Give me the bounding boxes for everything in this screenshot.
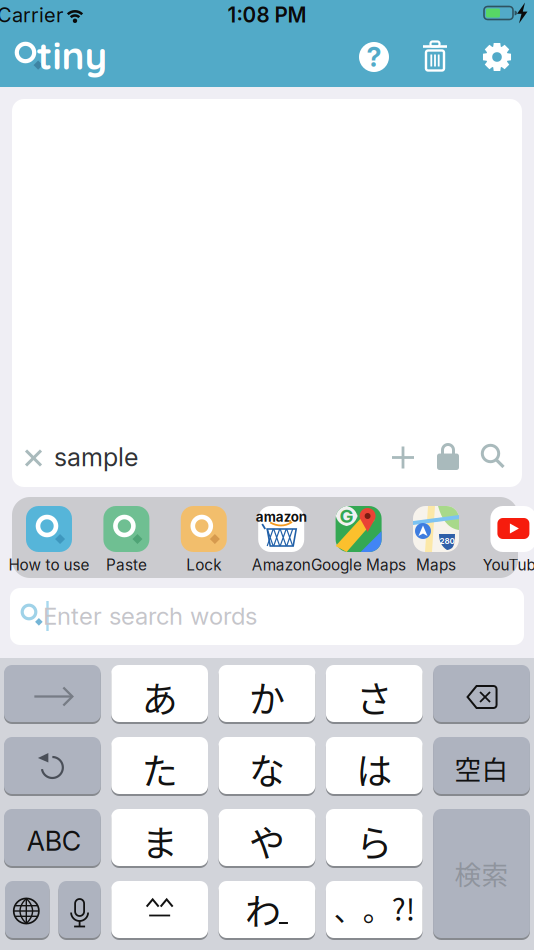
staticText: How to use (8, 556, 89, 574)
staticText: Maps (416, 556, 456, 574)
staticText: Google Maps (311, 556, 406, 574)
staticText: tiny (36, 31, 107, 79)
staticText: か (249, 671, 285, 723)
staticText: ABC (27, 825, 81, 857)
staticText: Carrier (0, 3, 63, 27)
staticText: Enter search words (43, 601, 257, 630)
staticText: 空白 (455, 749, 509, 787)
staticText: わ (245, 883, 281, 935)
staticText: ま (142, 815, 178, 867)
staticText: ら (356, 815, 392, 867)
staticText: G (340, 505, 354, 527)
staticText: 280 (439, 536, 454, 546)
staticText: Paste (106, 556, 147, 574)
staticText: あ (142, 671, 178, 723)
staticText: Lock (186, 556, 221, 574)
staticText: 検索 (455, 854, 509, 892)
staticText: ? (366, 41, 381, 73)
staticText: は (356, 743, 392, 795)
staticText: YouTube (482, 556, 534, 574)
staticText: Amazon (252, 556, 311, 574)
staticText: 、。?! (334, 887, 415, 929)
staticText: た (142, 743, 178, 795)
staticText: さ (356, 671, 392, 723)
staticText: sample (54, 442, 138, 472)
staticText: 1:08 PM (227, 2, 306, 27)
staticText: な (249, 743, 285, 795)
staticText: amazon (256, 509, 307, 525)
staticText: や (249, 815, 285, 867)
